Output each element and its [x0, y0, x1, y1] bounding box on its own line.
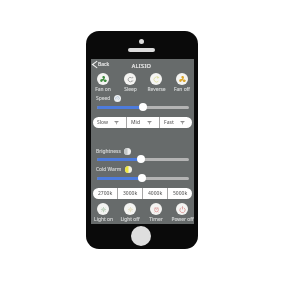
staticText: Fan on: [95, 86, 111, 93]
staticText: Sleep: [124, 86, 137, 93]
button[interactable]: [97, 174, 189, 182]
button[interactable]: Fan on: [90, 73, 116, 93]
button[interactable]: 2700k: [93, 188, 117, 199]
button[interactable]: [97, 155, 189, 163]
button[interactable]: Light off: [117, 203, 143, 223]
staticText: Slow: [97, 119, 109, 126]
staticText: 2700k: [98, 190, 113, 197]
staticText: Brightness: [96, 148, 121, 155]
staticText: Reverse: [147, 86, 166, 93]
button[interactable]: Mid: [127, 117, 159, 128]
staticText: Power off: [171, 216, 194, 223]
staticText: Timer: [149, 216, 163, 223]
staticText: Fan off: [174, 86, 190, 93]
staticText: Speed: [96, 95, 111, 102]
button[interactable]: Fan off: [169, 73, 195, 93]
staticText: ALISIO: [90, 62, 193, 70]
button[interactable]: Fast: [160, 117, 192, 128]
staticText: 4000k: [148, 190, 163, 197]
staticText: 3000k: [123, 190, 138, 197]
button[interactable]: Power off: [169, 203, 195, 223]
staticText: Light on: [94, 216, 113, 223]
button[interactable]: 4000k: [143, 188, 167, 199]
button[interactable]: 3000k: [118, 188, 142, 199]
staticText: 5000k: [173, 190, 188, 197]
staticText: Fast: [164, 119, 174, 126]
staticText: Light off: [120, 216, 140, 223]
button[interactable]: [97, 103, 189, 111]
staticText: Cold Warm: [96, 166, 122, 173]
staticText: Back: [98, 61, 110, 68]
staticText: Mid: [131, 119, 141, 126]
button[interactable]: Reverse: [143, 73, 169, 93]
button[interactable]: Light on: [90, 203, 116, 223]
button[interactable]: Back: [92, 61, 110, 68]
button[interactable]: 5000k: [168, 188, 192, 199]
button[interactable]: Sleep: [117, 73, 143, 93]
button[interactable]: Timer: [143, 203, 169, 223]
button[interactable]: Slow: [93, 117, 126, 128]
